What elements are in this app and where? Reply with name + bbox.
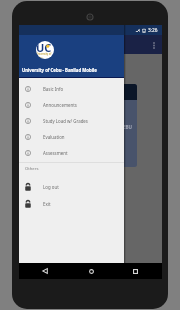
button[interactable]: Recent apps xyxy=(116,263,154,279)
staticText: UNIVERSITY OF CEBU xyxy=(84,124,133,130)
button[interactable]: Log out xyxy=(19,178,124,195)
button[interactable]: Back xyxy=(26,263,64,279)
staticText: Evaluation xyxy=(43,134,65,140)
button[interactable]: More options xyxy=(148,39,160,51)
staticText: Others xyxy=(25,166,39,172)
button[interactable]: Assessment xyxy=(19,145,124,161)
button[interactable]: Evaluation xyxy=(19,129,124,145)
staticText: Basic Info xyxy=(43,86,64,92)
staticText: Assessment xyxy=(43,150,68,156)
button[interactable]: Basic Info xyxy=(19,81,124,97)
button[interactable]: Study Load w/ Grades xyxy=(19,113,124,129)
staticText: Study Load w/ Grades xyxy=(43,118,88,124)
button[interactable]: Home xyxy=(73,264,109,279)
staticText: Announcements xyxy=(43,102,77,108)
staticText: University of Cebu xyxy=(36,52,54,59)
staticText: Log out xyxy=(43,184,59,190)
staticText: University of Cebu - Banilad Mobile xyxy=(22,67,97,73)
button[interactable]: Announcements xyxy=(19,97,124,113)
button[interactable]: Exit xyxy=(19,195,124,212)
staticText: 3:26 xyxy=(148,27,158,34)
staticText: UC xyxy=(36,41,52,55)
staticText: Exit xyxy=(43,201,51,207)
